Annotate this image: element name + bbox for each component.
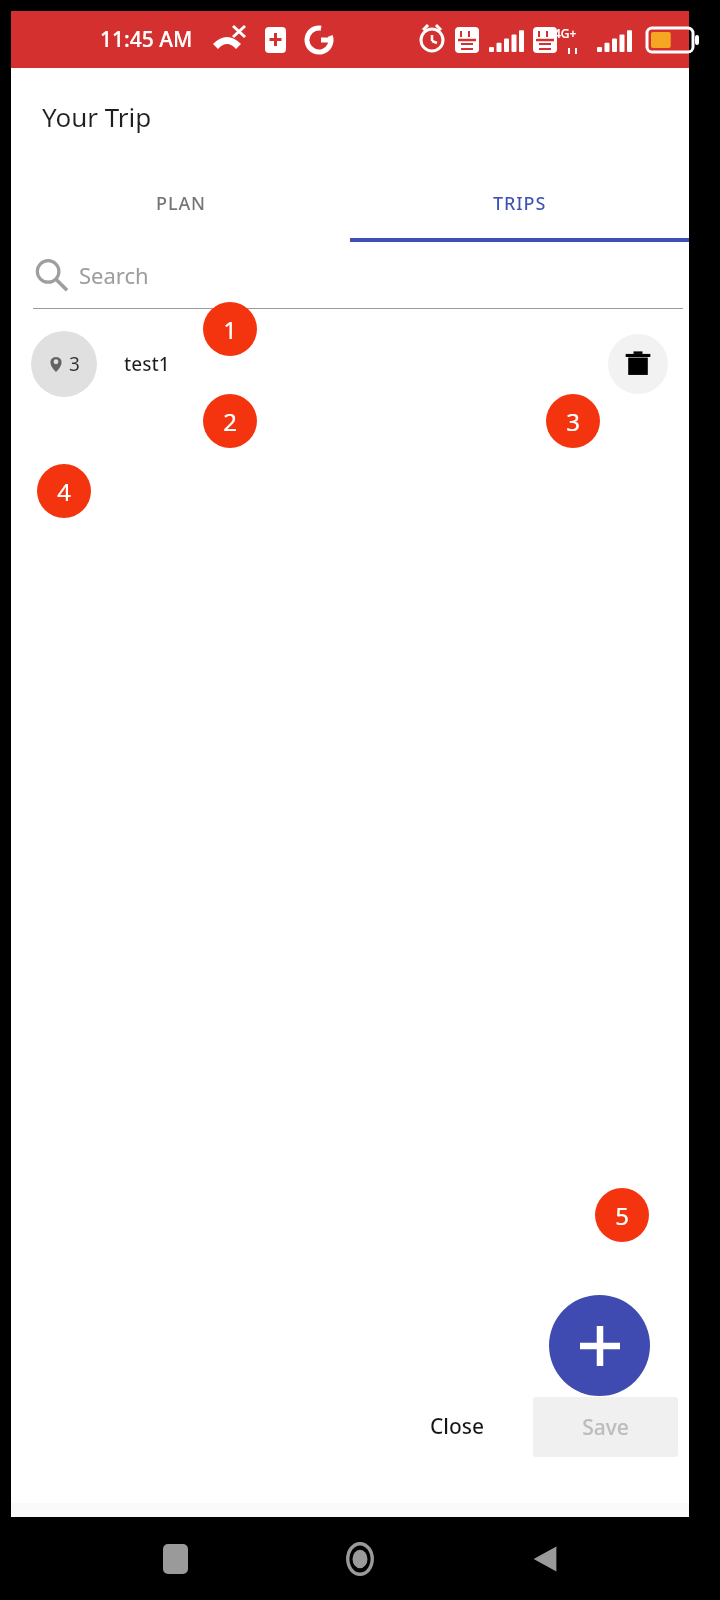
button[interactable]: Search xyxy=(33,242,683,308)
button[interactable]: Back xyxy=(516,1530,574,1588)
button[interactable]: Home xyxy=(331,1530,389,1588)
staticText: Close xyxy=(430,1412,485,1441)
staticText: Your Trip xyxy=(42,99,152,134)
button[interactable]: Add trip xyxy=(549,1295,650,1396)
button[interactable]: Save xyxy=(533,1397,678,1457)
staticText: 1 xyxy=(223,313,237,346)
button[interactable]: Close xyxy=(402,1396,513,1457)
staticText: 5 xyxy=(615,1199,629,1232)
staticText: test1 xyxy=(124,351,170,377)
button[interactable]: Delete trip xyxy=(608,334,668,394)
staticText: PLAN xyxy=(156,191,206,216)
staticText: 3 xyxy=(69,351,80,377)
button[interactable]: TRIPS xyxy=(350,164,689,242)
staticText: 4G+ xyxy=(554,25,577,41)
staticText: TRIPS xyxy=(493,191,547,216)
button[interactable]: 3 xyxy=(11,331,689,397)
staticText: 4 xyxy=(57,475,71,508)
staticText: 2 xyxy=(223,405,237,438)
staticText: Save xyxy=(582,1413,629,1442)
staticText: 11:45 AM xyxy=(100,25,193,54)
button[interactable]: PLAN xyxy=(11,164,350,242)
staticText: Search xyxy=(79,260,149,290)
staticText: 3 xyxy=(566,405,580,438)
button[interactable]: Recent apps xyxy=(146,1530,204,1588)
